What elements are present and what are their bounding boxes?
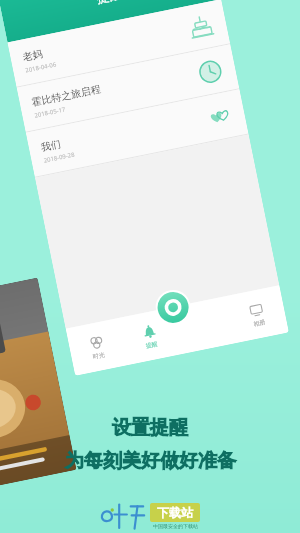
staticText: 2018-09-28	[43, 150, 76, 165]
button[interactable]: 新建	[152, 287, 194, 328]
staticText: 我们	[40, 137, 62, 154]
staticText: 霍比特之旅启程	[31, 82, 102, 109]
staticText: 为每刻美好做好准备	[65, 449, 236, 473]
button[interactable]: 相册	[225, 285, 289, 343]
staticText: 时光	[92, 351, 105, 361]
staticText: 提醒	[95, 0, 123, 6]
button[interactable]: 我们	[26, 89, 248, 177]
staticText: 设置提醒	[112, 416, 188, 440]
button[interactable]: 提醒	[119, 307, 181, 365]
staticText: 下载站	[157, 505, 193, 520]
staticText: 2018-04-06	[25, 60, 58, 74]
button[interactable]: 时光	[66, 318, 128, 376]
button[interactable]: 霍比特之旅启程	[17, 44, 239, 132]
staticText: 中国最安全的下载站	[153, 523, 198, 529]
staticText: 提醒	[145, 340, 158, 350]
staticText: 2018-05-17	[34, 105, 67, 120]
staticText: 相册	[253, 318, 266, 328]
staticText: 老妈	[21, 47, 44, 64]
button[interactable]: 老妈	[7, 0, 230, 87]
